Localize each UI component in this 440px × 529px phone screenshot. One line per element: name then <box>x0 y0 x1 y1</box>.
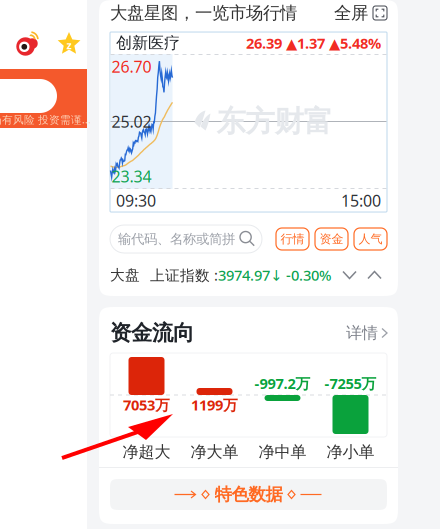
button[interactable]: 分享到微博 <box>15 32 39 56</box>
staticText: 特色数据 <box>214 484 282 505</box>
staticText: -7255万 <box>324 373 376 393</box>
staticText: 1199万 <box>191 395 238 414</box>
staticText: 开户 <box>0 76 22 116</box>
staticText: 上证指数 : <box>150 265 218 285</box>
button[interactable]: 下一个 <box>362 263 387 287</box>
staticText: 创新医疗 <box>116 33 180 53</box>
button[interactable]: 资金 <box>315 228 348 250</box>
staticText: 净小单 <box>326 442 374 462</box>
button[interactable]: 特色数据 <box>110 479 387 510</box>
staticText: 资金流向 <box>110 320 194 346</box>
button[interactable]: 人气 <box>354 228 387 250</box>
staticText: 净大单 <box>190 442 238 462</box>
button[interactable]: 全屏 <box>334 1 387 25</box>
staticText: 25.02 <box>111 111 151 132</box>
staticText: 15:00 <box>341 190 381 211</box>
staticText: z <box>66 38 71 52</box>
staticText: 26.39 ▲1.37 ▲5.48% <box>246 33 381 53</box>
staticText: 大盘 <box>110 266 140 284</box>
staticText: -997.2万 <box>254 373 310 393</box>
button[interactable]: 上一个 <box>337 263 362 287</box>
staticText: 大盘星图，一览市场行情 <box>110 2 297 24</box>
staticText: 东方财富 <box>216 103 332 139</box>
staticText: 全屏 <box>334 2 368 24</box>
staticText: 23.34 <box>111 166 151 187</box>
staticText: 净超大 <box>122 442 170 462</box>
staticText: 详情 <box>346 323 378 343</box>
staticText: 09:30 <box>116 190 156 211</box>
staticText: 场有风险 投资需谨慎 <box>0 112 91 127</box>
staticText: 资金 <box>319 232 343 246</box>
button[interactable]: 行情 <box>276 228 309 250</box>
button[interactable]: 详情 <box>346 322 387 344</box>
button[interactable]: 收藏 <box>57 31 81 56</box>
button[interactable]: 输代码、名称或简拼 <box>110 225 262 253</box>
button[interactable]: 开户 <box>0 69 87 128</box>
staticText: 人气 <box>358 232 382 246</box>
staticText: 净中单 <box>258 442 306 462</box>
staticText: -0.30% <box>286 265 331 285</box>
staticText: 7053万 <box>123 395 170 414</box>
staticText: 26.70 <box>111 56 151 77</box>
staticText: 3974.97↓ <box>218 265 282 285</box>
staticText: 输代码、名称或简拼 <box>118 231 235 247</box>
staticText: 行情 <box>280 232 304 246</box>
